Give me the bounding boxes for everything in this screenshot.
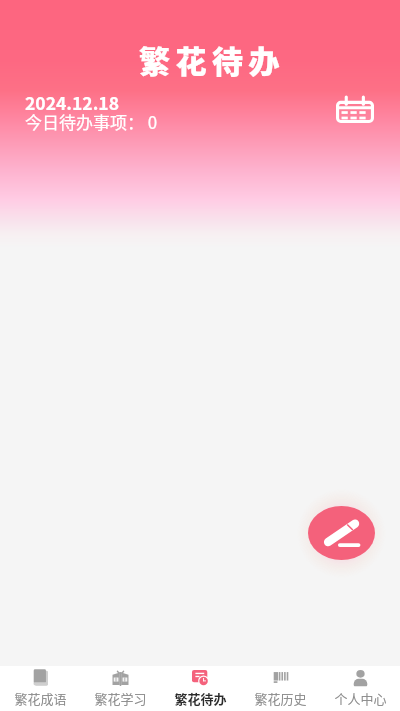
button[interactable]: 繁花历史: [240, 666, 320, 711]
staticText: 繁花待办: [174, 689, 227, 708]
button[interactable]: Add todo: [308, 506, 375, 560]
staticText: 繁花历史: [254, 689, 307, 708]
button[interactable]: Calendar: [331, 92, 379, 128]
staticText: 繁花学习: [94, 689, 147, 708]
button[interactable]: 繁花学习: [80, 666, 160, 711]
button[interactable]: 繁花成语: [0, 666, 80, 711]
staticText: 个人中心: [334, 689, 387, 708]
staticText: 今日待办事项： 0: [25, 109, 158, 134]
staticText: 繁花待办: [139, 37, 285, 82]
staticText: 繁花成语: [14, 689, 67, 708]
staticText: 2024.12.18: [25, 90, 119, 115]
button[interactable]: 繁花待办: [160, 666, 240, 711]
button[interactable]: 个人中心: [320, 666, 400, 711]
